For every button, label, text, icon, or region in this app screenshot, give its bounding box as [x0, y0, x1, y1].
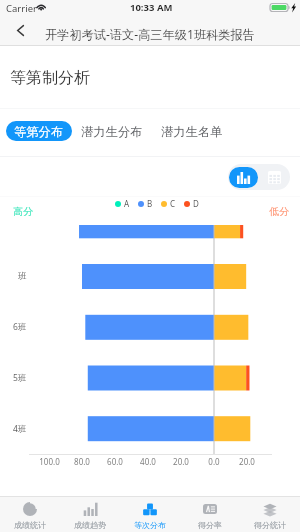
staticText: 潜力生分布 [81, 124, 143, 139]
staticText: 10:33 AM [130, 1, 173, 14]
staticText: 5班 [13, 372, 27, 384]
button[interactable]: Back [0, 22, 40, 46]
button[interactable]: 潜力生分布 [77, 121, 147, 141]
button[interactable]: 得分统计 [240, 496, 300, 532]
staticText: 20.0 [173, 456, 189, 467]
staticText: 得分统计 [254, 520, 286, 530]
button[interactable]: 潜力生名单 [157, 121, 227, 141]
staticText: 100.0 [39, 456, 60, 467]
staticText: 等第制分析 [10, 68, 90, 88]
staticText: 班 [18, 271, 27, 282]
staticText: Carrier [6, 2, 37, 15]
staticText: 6班 [13, 321, 27, 333]
staticText: 40.0 [140, 456, 156, 467]
button[interactable]: 等第分布 [6, 121, 72, 141]
staticText: 20.0 [239, 456, 255, 467]
button[interactable]: Table view [259, 167, 289, 188]
staticText: 成绩趋势 [74, 520, 106, 530]
staticText: 开学初考试-语文-高三年级1班科类报告 [45, 26, 255, 43]
button[interactable]: 成绩统计 [0, 496, 60, 532]
staticText: 高分 [13, 205, 33, 218]
staticText: 得分率 [198, 520, 222, 530]
staticText: 80.0 [74, 456, 90, 467]
button[interactable]: 等次分布 [120, 496, 180, 532]
staticText: 60.0 [107, 456, 123, 467]
staticText: A [124, 198, 130, 209]
staticText: D [193, 198, 199, 209]
button[interactable]: Bar chart view [229, 167, 258, 188]
staticText: 成绩统计 [14, 520, 46, 530]
button[interactable]: 成绩趋势 [60, 496, 120, 532]
staticText: 低分 [269, 205, 289, 218]
staticText: B [147, 198, 153, 209]
staticText: 等第分布 [14, 124, 64, 139]
staticText: 潜力生名单 [161, 124, 223, 139]
staticText: 4班 [13, 423, 27, 435]
button[interactable]: 得分率 [180, 496, 240, 532]
staticText: 等次分布 [134, 520, 166, 530]
staticText: C [170, 198, 176, 209]
staticText: 0.0 [208, 456, 220, 467]
